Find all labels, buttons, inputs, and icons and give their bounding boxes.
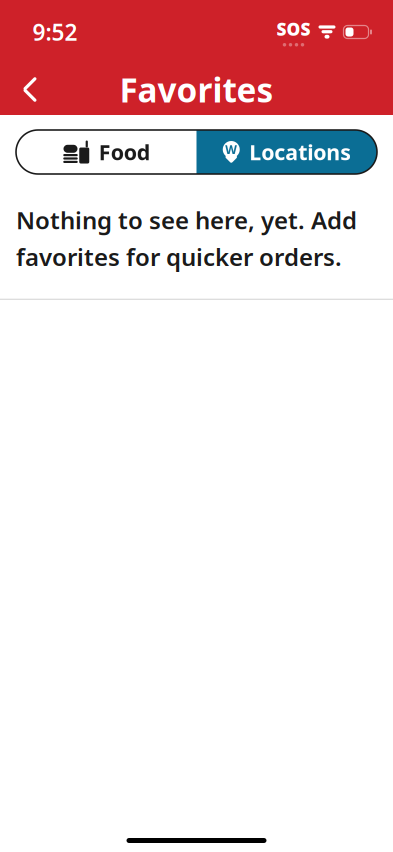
staticText: Locations [249, 138, 351, 166]
staticText: Nothing to see here, yet. Add favorites … [16, 204, 357, 273]
staticText: W [225, 141, 237, 157]
staticText: Food [99, 138, 150, 166]
staticText: 9:52 [32, 17, 77, 47]
staticText: Favorites [119, 67, 273, 112]
button[interactable]: W [196, 130, 377, 174]
button[interactable]: Back [5, 64, 55, 114]
button[interactable]: Food [16, 130, 196, 174]
staticText: SOS [276, 17, 310, 40]
